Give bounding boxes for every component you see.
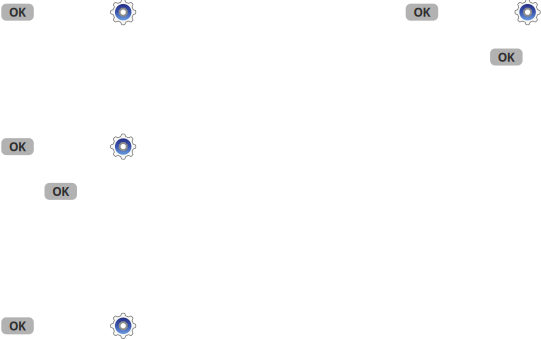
button[interactable]: Settings [515, 0, 540, 25]
staticText: OK [9, 4, 26, 20]
button[interactable]: Settings [111, 313, 136, 338]
staticText: OK [9, 318, 26, 334]
button[interactable]: OK [1, 317, 34, 334]
staticText: OK [52, 183, 69, 199]
button[interactable]: OK [1, 138, 34, 155]
button[interactable]: OK [1, 4, 34, 21]
button[interactable]: Settings [111, 134, 136, 159]
staticText: OK [413, 4, 430, 20]
staticText: OK [9, 139, 26, 154]
button[interactable]: Settings [111, 0, 136, 25]
button[interactable]: OK [490, 48, 523, 65]
button[interactable]: OK [44, 183, 77, 200]
staticText: OK [498, 49, 515, 65]
button[interactable]: OK [406, 4, 438, 21]
